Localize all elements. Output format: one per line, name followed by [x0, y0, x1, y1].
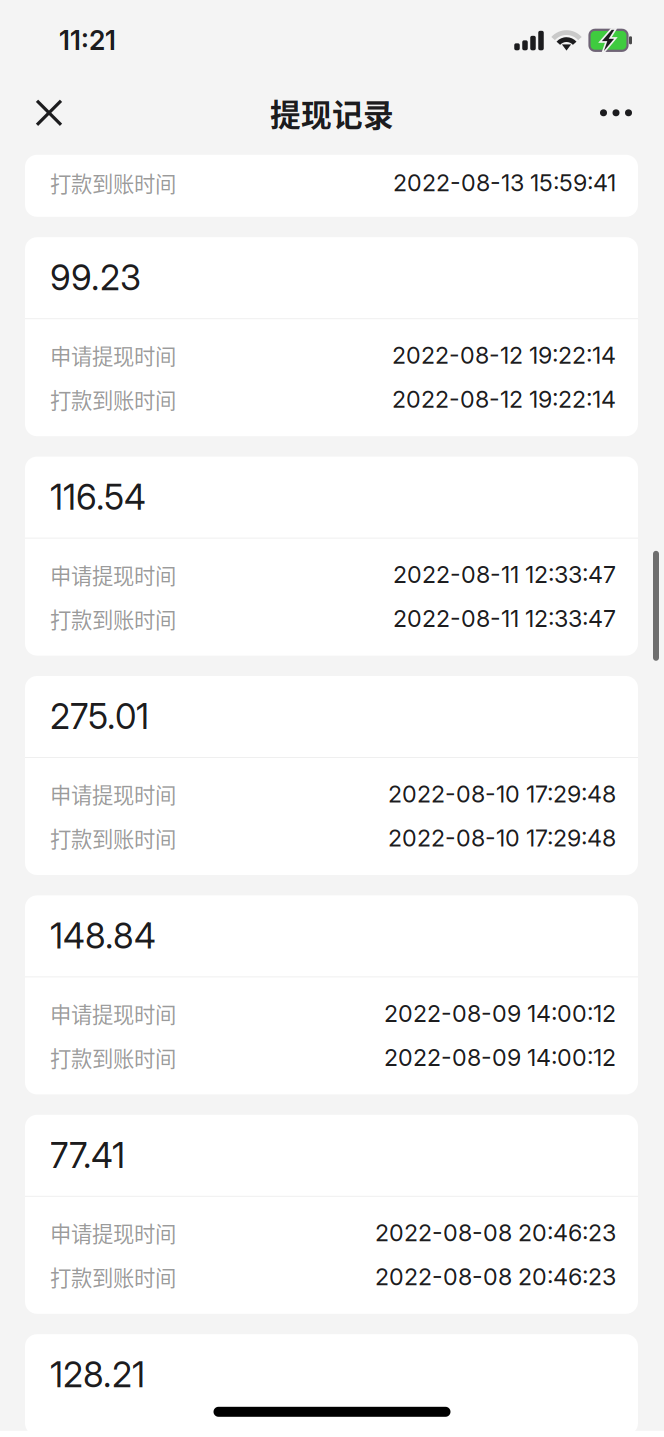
staticText: 打款到账时间 — [50, 603, 176, 634]
staticText: 打款到账时间 — [50, 384, 176, 415]
button[interactable]: Close — [21, 85, 77, 141]
staticText: 2022-08-08 20:46:23 — [375, 1263, 616, 1291]
staticText: 2022-08-11 12:33:47 — [393, 560, 616, 589]
staticText: 提现记录 — [270, 91, 394, 135]
staticText: 128.21 — [50, 1354, 145, 1396]
staticText: 2022-08-09 14:00:12 — [384, 999, 616, 1027]
staticText: 申请提现时间 — [50, 779, 176, 809]
staticText: 77.41 — [50, 1134, 125, 1176]
staticText: 148.84 — [50, 915, 156, 957]
staticText: 11:21 — [59, 24, 116, 56]
staticText: 2022-08-09 14:00:12 — [384, 1043, 616, 1071]
button[interactable]: 116.54 — [25, 457, 638, 656]
staticText: 申请提现时间 — [50, 559, 176, 590]
staticText: 申请提现时间 — [50, 1217, 176, 1248]
staticText: 2022-08-08 20:46:23 — [375, 1219, 616, 1247]
button[interactable]: 148.84 — [25, 895, 638, 1094]
staticText: 打款到账时间 — [50, 1042, 176, 1073]
staticText: 打款到账时间 — [50, 823, 176, 853]
staticText: 275.01 — [50, 695, 149, 737]
staticText: 2022-08-10 17:29:48 — [388, 780, 616, 808]
button[interactable]: 99.23 — [25, 237, 638, 436]
staticText: 2022-08-11 12:33:47 — [393, 604, 616, 633]
staticText: 2022-08-13 15:59:41 — [393, 169, 616, 197]
staticText: 99.23 — [50, 257, 141, 299]
staticText: 2022-08-12 19:22:14 — [392, 385, 616, 413]
button[interactable]: More options — [586, 85, 646, 141]
button[interactable]: 打款到账时间 — [25, 155, 638, 217]
staticText: 2022-08-10 17:29:48 — [388, 824, 616, 852]
staticText: 2022-08-12 19:22:14 — [392, 341, 616, 369]
button[interactable]: 77.41 — [25, 1115, 638, 1314]
staticText: 申请提现时间 — [50, 998, 176, 1029]
staticText: 申请提现时间 — [50, 340, 176, 371]
button[interactable]: 128.21 — [25, 1334, 638, 1435]
button[interactable]: 275.01 — [25, 676, 638, 875]
staticText: 116.54 — [50, 476, 146, 518]
staticText: 打款到账时间 — [50, 1261, 176, 1292]
staticText: 打款到账时间 — [50, 167, 176, 198]
